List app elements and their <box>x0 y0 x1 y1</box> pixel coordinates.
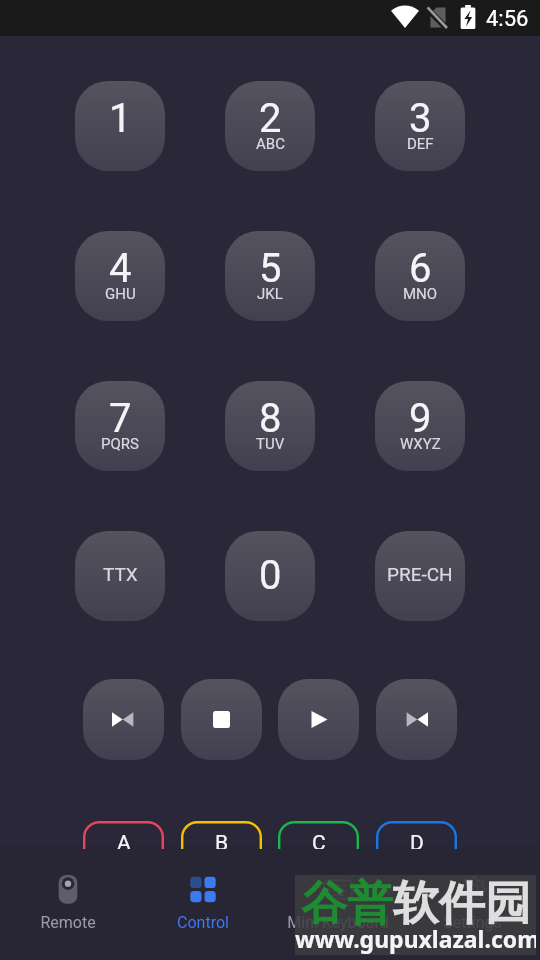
staticText: 谷普 <box>301 875 393 933</box>
button[interactable]: A <box>83 821 164 849</box>
button[interactable]: 7 <box>75 381 165 471</box>
button[interactable]: 8 <box>225 381 315 471</box>
button[interactable]: 4 <box>75 231 165 321</box>
button[interactable]: PRE-CH <box>375 531 465 621</box>
staticText: Control <box>177 913 229 932</box>
staticText: DEF <box>407 135 434 153</box>
button[interactable]: Mini Keyboard <box>270 846 405 960</box>
button[interactable]: Rewind <box>83 679 164 760</box>
button[interactable]: 1 <box>75 81 165 171</box>
button[interactable]: 9 <box>375 381 465 471</box>
button[interactable]: 5 <box>225 231 315 321</box>
staticText: 2 <box>259 95 282 142</box>
button[interactable]: Remote <box>0 846 135 960</box>
staticText: 7 <box>109 395 132 442</box>
staticText: B <box>215 831 229 849</box>
staticText: 4:56 <box>486 6 529 32</box>
staticText: WXYZ <box>400 435 441 453</box>
staticText: GHU <box>105 285 136 303</box>
staticText: PRE-CH <box>387 563 453 585</box>
staticText: MNO <box>403 285 438 303</box>
staticText: 6 <box>409 245 432 292</box>
button[interactable]: TTX <box>75 531 165 621</box>
button[interactable]: Settings <box>405 846 540 960</box>
button[interactable]: Stop <box>181 679 262 760</box>
button[interactable]: Control <box>135 846 270 960</box>
staticText: 9 <box>409 395 432 442</box>
button[interactable]: D <box>376 821 457 849</box>
staticText: TUV <box>256 435 285 453</box>
staticText: JKL <box>257 285 283 303</box>
staticText: ABC <box>256 135 285 153</box>
button[interactable]: 0 <box>225 531 315 621</box>
staticText: 软件园 <box>393 875 531 933</box>
staticText: 0 <box>259 552 282 599</box>
staticText: 1 <box>109 95 132 142</box>
staticText: Settings <box>443 913 502 932</box>
staticText: www.gupuxlazal.com <box>295 923 536 954</box>
staticText: 4 <box>109 245 132 292</box>
button[interactable]: Fast forward <box>376 679 457 760</box>
staticText: C <box>312 831 326 849</box>
button[interactable]: 6 <box>375 231 465 321</box>
staticText: 8 <box>259 395 282 442</box>
button[interactable]: 2 <box>225 81 315 171</box>
button[interactable]: 3 <box>375 81 465 171</box>
staticText: TTX <box>103 563 138 585</box>
button[interactable]: C <box>278 821 359 849</box>
staticText: PQRS <box>101 435 139 453</box>
staticText: Remote <box>40 913 96 932</box>
staticText: 5 <box>259 245 282 292</box>
staticText: Mini Keyboard <box>287 913 389 932</box>
button[interactable]: Play <box>278 679 359 760</box>
button[interactable]: B <box>181 821 262 849</box>
staticText: A <box>117 831 131 849</box>
staticText: 3 <box>409 95 432 142</box>
staticText: D <box>410 831 424 849</box>
